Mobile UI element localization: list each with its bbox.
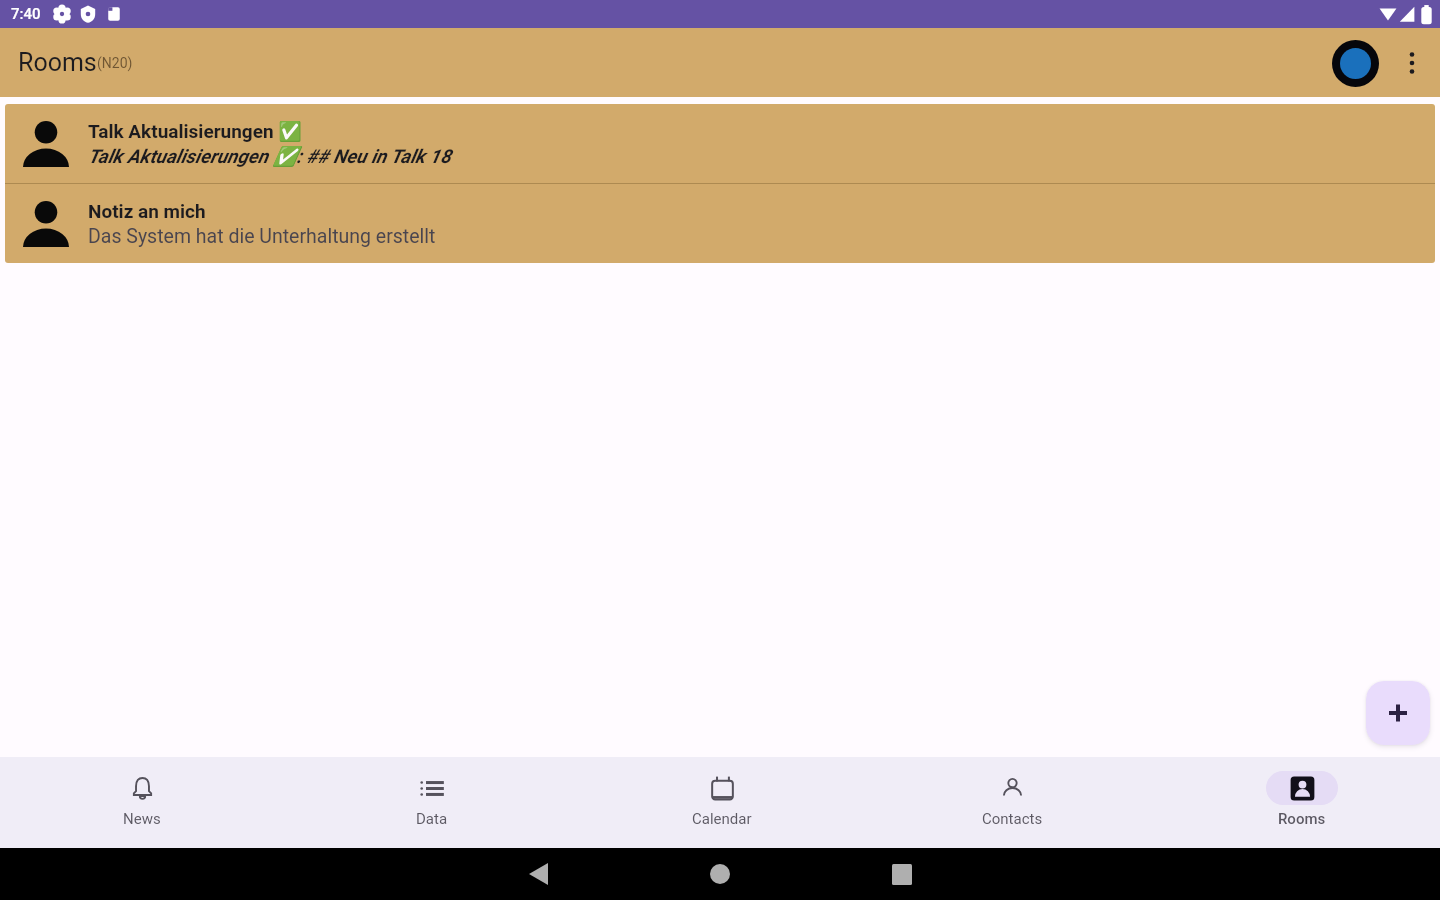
staticText: Rooms <box>1278 810 1326 828</box>
staticText: Data <box>416 810 448 828</box>
button[interactable]: News <box>0 757 287 848</box>
staticText: Rooms <box>18 48 97 77</box>
staticText: 7:40 <box>11 5 41 23</box>
button[interactable]: Recent apps <box>884 856 920 892</box>
button[interactable]: Data <box>287 757 577 848</box>
button[interactable]: Account <box>1328 36 1382 90</box>
button[interactable]: Rooms <box>1157 757 1440 848</box>
staticText: Notiz an mich <box>88 200 206 222</box>
button[interactable]: Talk Aktualisierungen ✅ <box>5 104 1435 183</box>
staticText: Talk Aktualisierungen ✅: ## Neu in Talk … <box>88 145 451 167</box>
staticText: (N20) <box>97 55 133 71</box>
staticText: Contacts <box>982 810 1043 828</box>
button[interactable]: Back <box>520 856 556 892</box>
button[interactable]: Contacts <box>867 757 1157 848</box>
staticText: Talk Aktualisierungen ✅ <box>88 120 303 142</box>
staticText: Calendar <box>692 810 752 828</box>
button[interactable]: Notiz an mich <box>5 184 1435 263</box>
button[interactable]: New conversation <box>1366 681 1430 745</box>
staticText: Das System hat die Unterhaltung erstellt <box>88 225 436 248</box>
button[interactable]: Home <box>702 856 738 892</box>
button[interactable]: Calendar <box>577 757 867 848</box>
button[interactable]: More options <box>1392 43 1432 83</box>
staticText: News <box>123 810 161 828</box>
